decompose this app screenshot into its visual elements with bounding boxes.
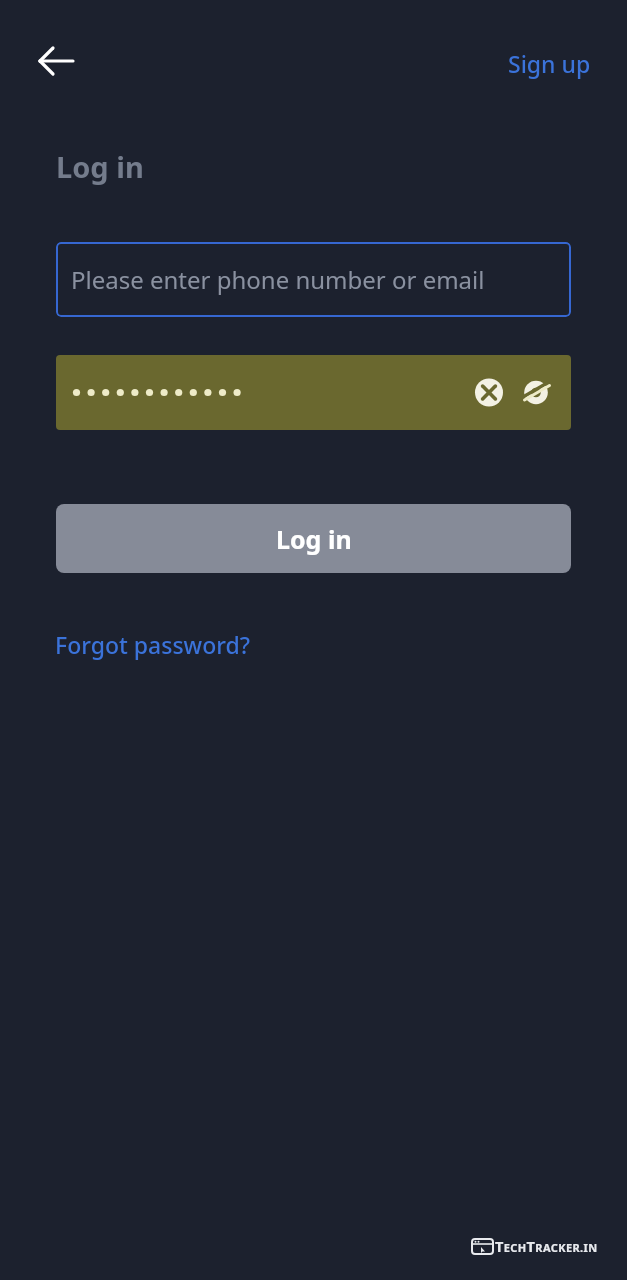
staticText: TECHTRACKER.IN <box>495 1236 598 1256</box>
button[interactable] <box>56 355 571 430</box>
staticText: Please enter phone number or email <box>71 263 485 296</box>
button[interactable]: Please enter phone number or email <box>56 242 571 317</box>
staticText: Log in <box>276 522 352 556</box>
button[interactable]: Sign up <box>508 48 591 79</box>
staticText: Sign up <box>508 48 591 79</box>
button[interactable]: Forgot password? <box>55 629 250 660</box>
button[interactable]: Log in <box>56 504 571 573</box>
button[interactable] <box>26 31 86 91</box>
staticText: Log in <box>56 147 144 186</box>
staticText: Forgot password? <box>55 629 250 660</box>
